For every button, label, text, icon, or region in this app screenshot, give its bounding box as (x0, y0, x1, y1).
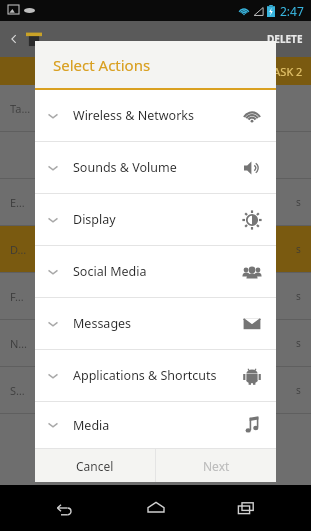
staticText: Applications & Shortcuts (73, 367, 217, 384)
staticText: s (296, 383, 301, 397)
staticText: Messages (73, 315, 132, 332)
staticText: E… (10, 195, 25, 210)
staticText: Cancel (76, 458, 114, 474)
staticText: Wireless & Networks (73, 107, 194, 124)
button[interactable]: Back (39, 485, 91, 531)
button[interactable]: Recent apps (220, 485, 272, 531)
staticText: D… (10, 242, 27, 257)
staticText: Ta… (10, 101, 31, 116)
staticText: DELETE (267, 32, 303, 46)
button[interactable]: Wireless & Networks (35, 90, 276, 141)
staticText: Social Media (73, 263, 147, 280)
staticText: Next (203, 458, 230, 474)
staticText: N… (10, 336, 28, 351)
button[interactable]: Display (35, 194, 276, 245)
staticText: Display (73, 211, 116, 228)
button[interactable]: Social Media (35, 246, 276, 297)
staticText: Media (73, 417, 110, 434)
staticText: Select Actions (53, 55, 151, 75)
staticText: s (296, 336, 301, 350)
button[interactable]: Sounds & Volume (35, 142, 276, 193)
button[interactable]: Next (156, 449, 276, 482)
button[interactable]: Applications & Shortcuts (35, 350, 276, 401)
button[interactable]: Home (130, 485, 182, 531)
staticText: Sounds & Volume (73, 159, 177, 176)
staticText: s (296, 242, 301, 256)
staticText: s (296, 195, 301, 209)
staticText: S… (10, 383, 25, 398)
staticText: s (296, 289, 301, 303)
staticText: 2:47 (280, 3, 304, 19)
button[interactable]: Cancel (35, 449, 155, 482)
staticText: TASK 2 (268, 64, 303, 79)
staticText: F… (10, 289, 24, 304)
button[interactable]: Media (35, 402, 276, 448)
button[interactable]: Messages (35, 298, 276, 349)
